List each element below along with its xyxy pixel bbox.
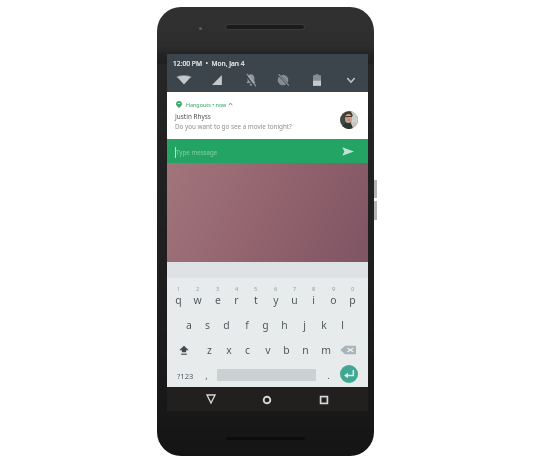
staticText: 3 — [216, 286, 219, 293]
staticText: z — [207, 343, 212, 357]
button[interactable]: Home — [258, 391, 276, 409]
button[interactable]: v — [258, 342, 277, 358]
button[interactable]: 1 — [169, 281, 188, 297]
staticText: v — [265, 343, 271, 357]
button[interactable]: 0 — [343, 281, 362, 297]
button[interactable]: 3 — [208, 281, 227, 297]
staticText: a — [186, 318, 192, 332]
button[interactable]: d — [217, 317, 236, 333]
staticText: l — [341, 318, 344, 332]
staticText: m — [321, 343, 331, 357]
staticText: q — [175, 293, 182, 307]
staticText: 5 — [254, 286, 257, 293]
button[interactable]: Location off — [274, 71, 292, 89]
staticText: 2 — [196, 286, 199, 293]
button[interactable]: x — [219, 342, 238, 358]
staticText: g — [262, 318, 269, 332]
staticText: j — [303, 318, 306, 332]
button[interactable]: 2 — [188, 281, 207, 297]
staticText: o — [330, 293, 337, 307]
button[interactable]: z — [200, 342, 219, 358]
staticText: r — [234, 293, 239, 307]
button[interactable]: Shift — [177, 343, 191, 357]
button[interactable]: 6 — [266, 281, 285, 297]
button[interactable]: Battery — [308, 71, 326, 89]
staticText: x — [226, 343, 232, 357]
staticText: 1 — [177, 286, 180, 293]
button[interactable]: 7 — [285, 281, 304, 297]
button[interactable]: y — [266, 292, 285, 308]
staticText: Type message — [176, 148, 218, 156]
staticText: 0 — [351, 286, 354, 293]
button[interactable]: q — [169, 292, 188, 308]
staticText: c — [245, 343, 250, 357]
button[interactable]: Send — [342, 147, 354, 156]
button[interactable]: , — [197, 367, 216, 383]
button[interactable]: Recents — [315, 391, 333, 409]
button[interactable]: w — [188, 292, 207, 308]
button[interactable]: l — [333, 317, 352, 333]
button[interactable]: m — [316, 342, 335, 358]
button[interactable]: n — [296, 342, 315, 358]
staticText: f — [245, 318, 249, 332]
staticText: . — [327, 369, 330, 381]
button[interactable]: g — [256, 317, 275, 333]
button[interactable]: r — [227, 292, 246, 308]
staticText: h — [281, 318, 288, 332]
button[interactable]: Hangouts • now — [167, 92, 368, 139]
staticText: , — [205, 369, 208, 381]
button[interactable]: e — [208, 292, 227, 308]
button[interactable]: h — [275, 317, 294, 333]
staticText: u — [291, 293, 298, 307]
staticText: k — [321, 318, 327, 332]
button[interactable]: c — [238, 342, 257, 358]
staticText: 6 — [274, 286, 277, 293]
button[interactable]: 9 — [324, 281, 343, 297]
button[interactable]: Back — [202, 390, 220, 408]
button[interactable]: j — [295, 317, 314, 333]
button[interactable]: o — [324, 292, 343, 308]
staticText: s — [205, 318, 210, 332]
button[interactable]: k — [314, 317, 333, 333]
staticText: Justin Rhyss — [175, 112, 211, 121]
staticText: i — [312, 293, 315, 307]
staticText: p — [349, 293, 356, 307]
staticText: w — [193, 293, 202, 307]
button[interactable]: Enter — [340, 365, 358, 383]
button[interactable]: f — [237, 317, 256, 333]
staticText: 8 — [312, 286, 315, 293]
staticText: 9 — [332, 286, 335, 293]
staticText: t — [254, 293, 258, 307]
button[interactable]: Wi‑Fi — [175, 71, 193, 89]
staticText: Do you want to go see a movie tonight? — [175, 122, 292, 131]
button[interactable]: 4 — [227, 281, 246, 297]
staticText: 7 — [293, 286, 296, 293]
button[interactable]: p — [343, 292, 362, 308]
button[interactable]: Expand — [342, 71, 360, 89]
staticText: n — [302, 343, 309, 357]
staticText: b — [283, 343, 290, 357]
staticText: d — [223, 318, 230, 332]
button[interactable]: ?123 — [174, 369, 196, 382]
button[interactable]: Backspace — [340, 344, 357, 356]
button[interactable]: Type message — [167, 139, 368, 163]
staticText: e — [215, 293, 221, 307]
button[interactable]: b — [277, 342, 296, 358]
staticText: Hangouts • now — [186, 101, 227, 108]
button[interactable]: i — [304, 292, 323, 308]
staticText: 4 — [235, 286, 238, 293]
button[interactable]: 8 — [304, 281, 323, 297]
button[interactable]: . — [319, 367, 338, 383]
button[interactable]: a — [179, 317, 198, 333]
button[interactable]: t — [246, 292, 265, 308]
staticText: ?123 — [177, 371, 194, 381]
button[interactable]: s — [198, 317, 217, 333]
staticText: 12:00 PM • Mon, Jan 4 — [173, 59, 245, 68]
button[interactable]: u — [285, 292, 304, 308]
button[interactable]: Cellular signal — [208, 71, 226, 89]
staticText: y — [273, 293, 279, 307]
button[interactable]: Ringer off — [242, 71, 260, 89]
button[interactable]: 5 — [246, 281, 265, 297]
